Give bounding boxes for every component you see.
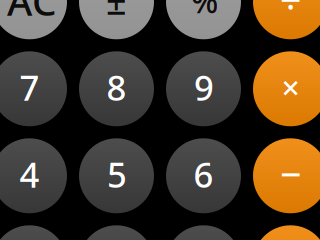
button[interactable]: × xyxy=(253,51,320,126)
staticText: − xyxy=(280,149,301,199)
button[interactable]: 7 xyxy=(0,51,67,126)
button[interactable]: AC xyxy=(0,0,67,39)
staticText: % xyxy=(191,0,218,22)
staticText: 9 xyxy=(194,64,214,110)
button[interactable]: − xyxy=(253,138,320,213)
staticText: AC xyxy=(7,0,57,26)
button[interactable]: 9 xyxy=(166,51,241,126)
button[interactable]: % xyxy=(166,0,241,39)
staticText: 8 xyxy=(106,64,126,110)
button[interactable]: + xyxy=(253,225,320,240)
staticText: ÷ xyxy=(280,0,301,24)
staticText: 6 xyxy=(193,151,213,197)
staticText: ± xyxy=(106,0,127,25)
button[interactable]: 4 xyxy=(0,138,67,213)
button[interactable]: 3 xyxy=(166,225,241,240)
button[interactable]: 6 xyxy=(166,138,241,213)
button[interactable]: 1 xyxy=(0,225,67,240)
button[interactable]: ÷ xyxy=(253,0,320,39)
button[interactable]: 5 xyxy=(79,138,154,213)
staticText: 7 xyxy=(19,64,39,110)
button[interactable]: 8 xyxy=(79,51,154,126)
staticText: 5 xyxy=(107,151,127,197)
staticText: 4 xyxy=(19,151,39,197)
button[interactable]: 2 xyxy=(79,225,154,240)
button[interactable]: ± xyxy=(79,0,154,39)
staticText: × xyxy=(281,66,299,109)
